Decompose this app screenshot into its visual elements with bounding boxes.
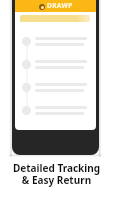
button[interactable]	[15, 53, 96, 76]
button[interactable]	[20, 15, 90, 22]
staticText: Detailed Tracking & Easy Return	[0, 161, 113, 187]
other: Drawp logo	[39, 4, 45, 10]
button[interactable]: Drawp logo	[15, 0, 96, 10]
staticText: DRAWP	[47, 1, 73, 10]
button[interactable]	[15, 76, 96, 99]
button[interactable]	[15, 30, 96, 53]
button[interactable]	[15, 99, 96, 122]
